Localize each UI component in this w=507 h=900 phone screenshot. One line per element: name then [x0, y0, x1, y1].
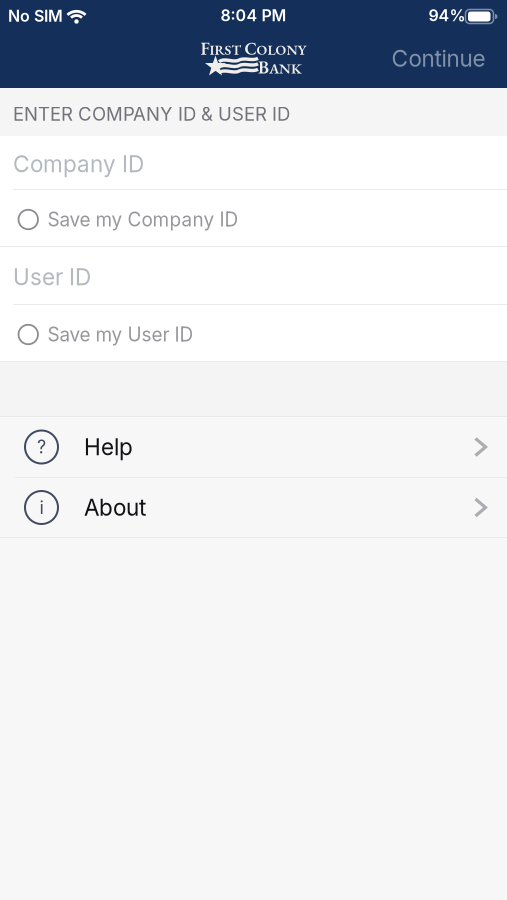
- staticText: Continue: [391, 45, 485, 72]
- staticText: i: [39, 497, 43, 518]
- button[interactable]: Continue: [391, 45, 485, 72]
- staticText: FIRST COLONY: [200, 37, 306, 60]
- staticText: 8:04 PM: [220, 6, 286, 25]
- button[interactable]: i: [0, 478, 507, 537]
- button[interactable]: Company ID: [0, 136, 507, 189]
- staticText: Save my User ID: [47, 323, 193, 346]
- staticText: BANK: [258, 55, 302, 78]
- button[interactable]: ?: [0, 417, 507, 477]
- button[interactable]: Save my Company ID: [0, 190, 507, 246]
- button[interactable]: Save my User ID: [0, 305, 507, 361]
- staticText: No SIM: [8, 6, 63, 26]
- button[interactable]: User ID: [0, 247, 507, 304]
- staticText: About: [84, 494, 146, 521]
- staticText: 94%: [428, 6, 465, 25]
- staticText: ENTER COMPANY ID & USER ID: [13, 103, 290, 125]
- staticText: Help: [84, 433, 133, 461]
- staticText: ?: [37, 436, 46, 458]
- staticText: User ID: [13, 263, 91, 291]
- staticText: Company ID: [13, 150, 144, 178]
- staticText: Save my Company ID: [47, 208, 238, 231]
